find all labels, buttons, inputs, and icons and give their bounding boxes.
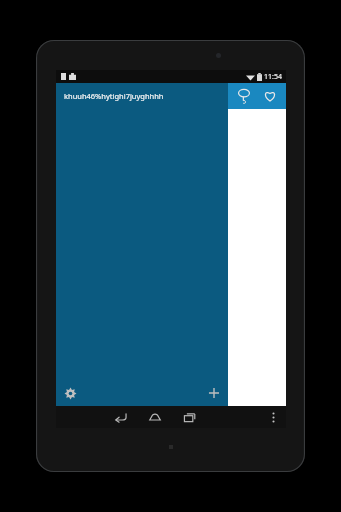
- button[interactable]: More options: [266, 406, 280, 428]
- staticText: khuuh46%hytighi7juyghhhh: [64, 91, 164, 101]
- staticText: 11:54: [264, 72, 282, 82]
- button[interactable]: Favorite: [257, 83, 283, 109]
- button[interactable]: Comments: [231, 83, 257, 109]
- button[interactable]: Settings: [60, 383, 80, 403]
- button[interactable]: Recents: [172, 406, 206, 428]
- button[interactable]: Add: [204, 383, 224, 403]
- button[interactable]: Back: [104, 406, 138, 428]
- button[interactable]: Home: [138, 406, 172, 428]
